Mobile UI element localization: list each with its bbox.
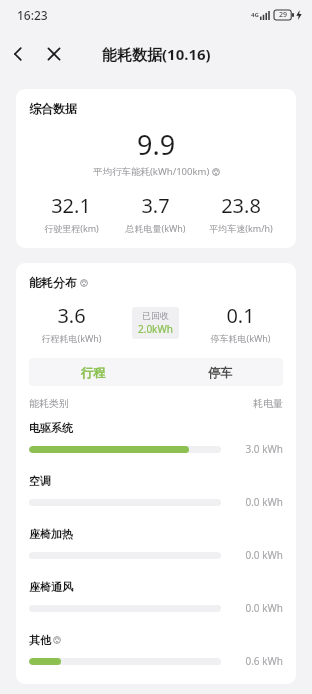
staticText: 23.8: [221, 192, 261, 219]
staticText: 耗电量: [253, 397, 283, 410]
button[interactable]: 停车: [156, 358, 283, 386]
staticText: 0.1: [226, 302, 255, 329]
staticText: 0.0 kWh: [245, 548, 283, 562]
staticText: 3.6: [57, 302, 86, 329]
button[interactable]: Close: [36, 36, 72, 72]
staticText: 总耗电量(kWh): [125, 222, 186, 234]
staticText: 0.0 kWh: [245, 601, 283, 615]
staticText: 座椅加热: [29, 527, 73, 541]
staticText: 行程: [81, 365, 105, 380]
staticText: 0.6 kWh: [245, 654, 283, 668]
staticText: 能耗分布: [29, 275, 77, 290]
staticText: 行程耗电(kWh): [41, 332, 102, 344]
staticText: 座椅通风: [29, 580, 73, 594]
button[interactable]: Back: [0, 36, 36, 72]
staticText: 停车耗电(kWh): [210, 332, 271, 344]
staticText: 29: [279, 10, 288, 20]
staticText: 2.0kWh: [138, 322, 173, 336]
staticText: 能耗数据(10.16): [102, 44, 211, 64]
staticText: 空调: [29, 474, 51, 488]
staticText: 3.7: [141, 192, 170, 219]
staticText: 平均车速(km/h): [209, 222, 273, 234]
staticText: 9.9: [137, 126, 176, 163]
staticText: 3.0 kWh: [245, 442, 283, 456]
staticText: 停车: [208, 365, 232, 380]
staticText: 32.1: [51, 192, 91, 219]
staticText: 0.0 kWh: [245, 495, 283, 509]
staticText: 其他: [29, 633, 51, 647]
staticText: 平均行车能耗(kWh/100km): [93, 165, 210, 178]
staticText: 电驱系统: [29, 421, 73, 435]
staticText: 4G: [251, 11, 259, 19]
staticText: 16:23: [17, 7, 48, 23]
staticText: 综合数据: [29, 101, 77, 116]
staticText: 能耗类别: [29, 397, 69, 410]
button[interactable]: 行程: [29, 358, 156, 386]
staticText: 行驶里程(km): [44, 222, 99, 234]
staticText: 已回收: [142, 310, 169, 321]
